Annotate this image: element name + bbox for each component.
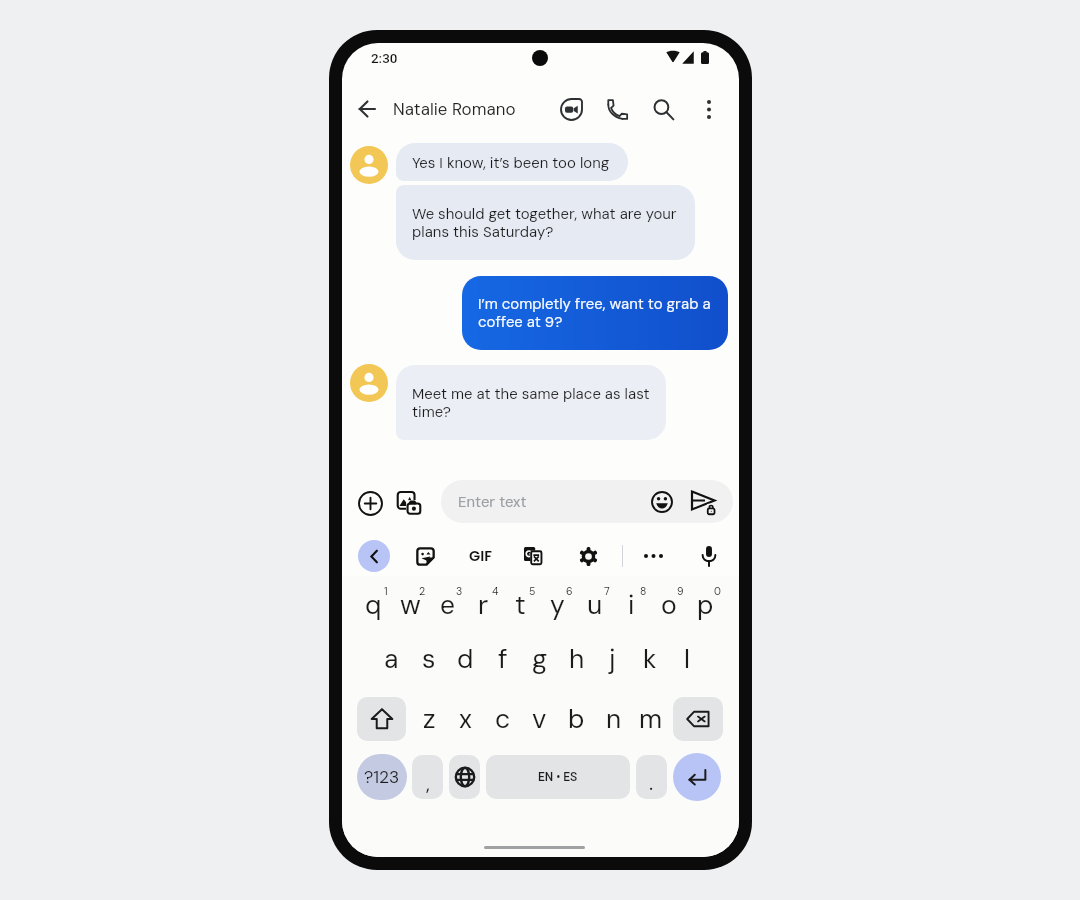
- button[interactable]: n: [595, 695, 632, 743]
- button[interactable]: Enter: [673, 753, 721, 801]
- staticText: u: [587, 588, 603, 622]
- staticText: z: [423, 702, 436, 736]
- button[interactable]: Keyboard settings: [572, 540, 604, 572]
- button[interactable]: 2: [392, 580, 429, 632]
- staticText: w: [400, 588, 421, 622]
- button[interactable]: Call: [597, 89, 637, 129]
- staticText: t: [515, 588, 526, 622]
- button[interactable]: g: [521, 634, 558, 686]
- staticText: f: [498, 642, 508, 676]
- staticText: i: [628, 588, 635, 622]
- staticText: We should get together, what are your pl…: [412, 204, 679, 242]
- button[interactable]: Shift: [357, 697, 406, 741]
- staticText: I’m completly free, want to grab a coffe…: [478, 294, 712, 332]
- staticText: GIF: [469, 546, 492, 566]
- staticText: ?123: [364, 766, 400, 788]
- button[interactable]: Add attachment: [352, 485, 388, 521]
- button[interactable]: ?123: [357, 754, 407, 800]
- staticText: 5: [529, 585, 536, 599]
- button[interactable]: Emoji: [647, 487, 677, 517]
- button[interactable]: I’m completly free, want to grab a coffe…: [462, 276, 728, 350]
- button[interactable]: More tools: [637, 540, 669, 572]
- button[interactable]: Translate: [517, 540, 549, 572]
- button[interactable]: Backspace: [673, 697, 723, 741]
- button[interactable]: 7: [576, 580, 613, 632]
- button[interactable]: Voice input: [693, 540, 725, 572]
- staticText: Yes I know, it’s been too long: [412, 153, 610, 172]
- staticText: 2:30: [371, 51, 398, 67]
- button[interactable]: ,: [412, 755, 443, 799]
- button[interactable]: z: [411, 695, 448, 743]
- button[interactable]: j: [594, 634, 631, 686]
- button[interactable]: d: [447, 634, 484, 686]
- button[interactable]: m: [632, 695, 669, 743]
- staticText: p: [697, 588, 714, 622]
- button[interactable]: 8: [613, 580, 650, 632]
- staticText: c: [495, 702, 511, 736]
- button[interactable]: Gallery: [391, 485, 427, 521]
- button[interactable]: Yes I know, it’s been too long: [396, 143, 628, 181]
- staticText: EN • ES: [538, 770, 578, 784]
- button[interactable]: Natalie Romano: [393, 89, 516, 129]
- button[interactable]: a: [373, 634, 410, 686]
- staticText: 1: [384, 585, 388, 599]
- button[interactable]: Back: [347, 89, 387, 129]
- button[interactable]: 5: [502, 580, 539, 632]
- button[interactable]: Collapse toolbar: [358, 540, 390, 572]
- button[interactable]: x: [447, 695, 484, 743]
- staticText: x: [459, 702, 472, 736]
- button[interactable]: 6: [539, 580, 576, 632]
- button[interactable]: v: [521, 695, 558, 743]
- button[interactable]: EN • ES: [486, 755, 630, 799]
- button[interactable]: s: [410, 634, 447, 686]
- staticText: .: [649, 770, 654, 796]
- staticText: 7: [604, 585, 610, 599]
- staticText: 2: [419, 585, 426, 599]
- button[interactable]: Meet me at the same place as last time?: [396, 365, 666, 440]
- staticText: Enter text: [458, 492, 527, 511]
- staticText: v: [532, 702, 547, 736]
- button[interactable]: GIF: [464, 540, 496, 572]
- button[interactable]: 4: [465, 580, 502, 632]
- button[interactable]: .: [636, 755, 667, 799]
- button[interactable]: f: [484, 634, 521, 686]
- staticText: 3: [456, 585, 463, 599]
- staticText: d: [457, 642, 474, 676]
- staticText: a: [384, 642, 399, 676]
- staticText: Natalie Romano: [393, 98, 516, 120]
- staticText: y: [550, 588, 565, 622]
- button[interactable]: 0: [687, 580, 724, 632]
- staticText: r: [478, 588, 489, 622]
- button[interactable]: k: [631, 634, 668, 686]
- button[interactable]: Search: [643, 89, 683, 129]
- button[interactable]: Send: [688, 487, 718, 517]
- staticText: 9: [677, 585, 684, 599]
- staticText: 6: [566, 585, 573, 599]
- button[interactable]: 9: [650, 580, 687, 632]
- button[interactable]: 3: [429, 580, 466, 632]
- button[interactable]: l: [668, 634, 705, 686]
- button[interactable]: Change language: [449, 755, 480, 799]
- button[interactable]: We should get together, what are your pl…: [396, 185, 695, 260]
- staticText: b: [568, 702, 585, 736]
- button[interactable]: Enter text: [441, 480, 733, 523]
- button[interactable]: More options: [689, 89, 729, 129]
- button[interactable]: h: [558, 634, 595, 686]
- staticText: Meet me at the same place as last time?: [412, 384, 653, 422]
- button[interactable]: b: [558, 695, 595, 743]
- staticText: ,: [426, 770, 430, 796]
- button[interactable]: Video call: [551, 89, 591, 129]
- staticText: g: [532, 642, 548, 676]
- staticText: e: [440, 588, 455, 622]
- staticText: k: [643, 642, 657, 676]
- button[interactable]: c: [484, 695, 521, 743]
- button[interactable]: Stickers: [409, 540, 441, 572]
- button[interactable]: 1: [355, 580, 392, 632]
- staticText: o: [661, 588, 677, 622]
- staticText: l: [684, 642, 690, 676]
- staticText: m: [639, 702, 663, 736]
- staticText: 0: [714, 585, 721, 599]
- staticText: s: [422, 642, 436, 676]
- staticText: j: [609, 642, 616, 676]
- staticText: 8: [640, 585, 647, 599]
